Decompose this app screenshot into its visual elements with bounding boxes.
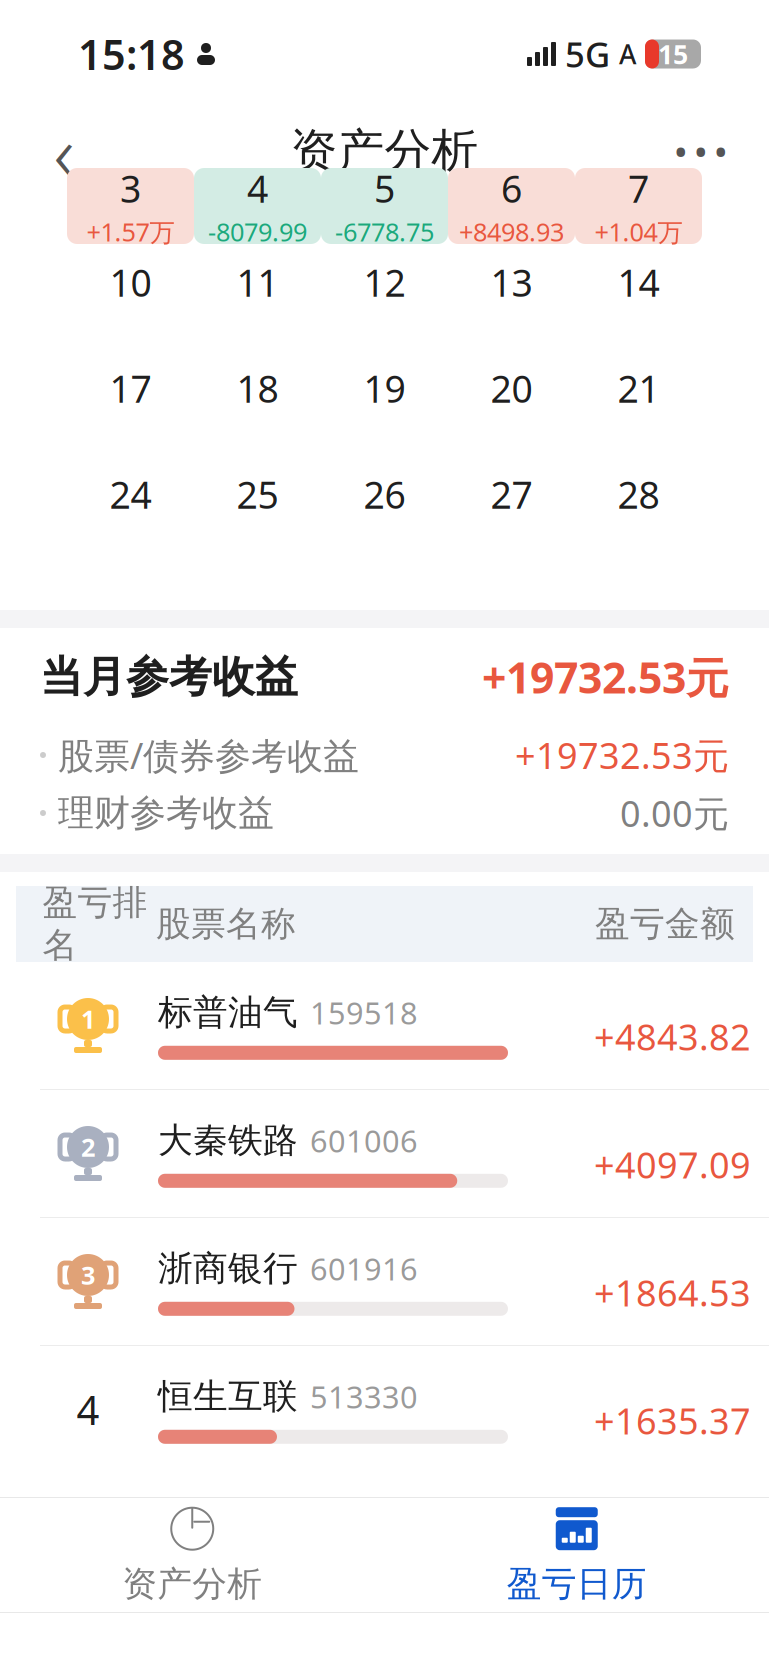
staticText: 标普油气 [158,991,298,1034]
button[interactable]: 14 [575,262,702,338]
staticText: +4843.82 [594,1013,751,1060]
staticText: 6 [501,163,522,213]
staticText: 盈亏排名 [42,881,147,967]
button[interactable]: 25 [194,474,321,550]
button[interactable]: 17 [67,368,194,444]
button[interactable]: 11 [194,262,321,338]
staticText: 10 [109,257,151,307]
button[interactable]: 13 [448,262,575,338]
staticText: 盈亏日历 [507,1563,647,1605]
staticText: 5G [565,31,610,77]
button[interactable]: 1 [0,962,769,1089]
staticText: 15 [658,36,688,72]
staticText: 1 [81,1002,95,1036]
button[interactable]: 18 [194,368,321,444]
button[interactable]: 12 [321,262,448,338]
staticText: +8498.93 [459,215,564,249]
staticText: 4 [76,1383,99,1436]
staticText: +19732.53元 [515,731,729,779]
button[interactable]: 7 [575,168,702,244]
staticText: 当月参考收益 [40,651,298,703]
staticText: 20 [490,363,532,413]
staticText: A [619,36,636,72]
staticText: 股票名称 [156,903,296,945]
button[interactable]: 19 [321,368,448,444]
button[interactable]: 5 [321,168,448,244]
staticText: • • • [675,131,727,171]
staticText: 3 [120,163,141,213]
staticText: +1.57万 [86,215,174,249]
staticText: 资产分析 [290,122,478,180]
button[interactable]: More options [655,109,747,193]
staticText: 21 [617,363,659,413]
staticText: 盈亏金额 [595,903,735,945]
staticText: 601916 [310,1248,418,1289]
staticText: 513330 [310,1376,418,1417]
staticText: 0.00元 [620,789,729,837]
staticText: +19732.53元 [482,649,729,705]
button[interactable]: 24 [67,474,194,550]
button[interactable]: 4 [194,168,321,244]
staticText: 理财参考收益 [58,791,274,835]
staticText: 13 [490,257,532,307]
staticText: 27 [490,469,532,519]
staticText: ‹ [53,98,74,204]
button[interactable]: 4 [0,1346,769,1473]
button[interactable]: 盈亏日历 [384,1499,769,1611]
staticText: +1.04万 [594,215,682,249]
staticText: 11 [236,257,278,307]
staticText: 大秦铁路 [158,1119,298,1162]
staticText: 2 [81,1130,95,1164]
button[interactable]: 10 [67,262,194,338]
staticText: 15:18 [78,27,185,81]
button[interactable]: 3 [0,1218,769,1345]
staticText: 恒生互联 [158,1375,298,1418]
button[interactable]: Back [22,109,106,193]
staticText: 4 [247,163,268,213]
staticText: -6778.75 [335,215,434,249]
staticText: 浙商银行 [158,1247,298,1290]
staticText: 24 [109,469,151,519]
staticText: 3 [81,1258,95,1292]
button[interactable]: 26 [321,474,448,550]
button[interactable]: 21 [575,368,702,444]
button[interactable]: 20 [448,368,575,444]
staticText: 7 [628,163,649,213]
staticText: +4097.09 [594,1141,751,1188]
staticText: 28 [617,469,659,519]
staticText: 14 [617,257,659,307]
button[interactable]: 3 [67,168,194,244]
staticText: 19 [363,363,405,413]
staticText: +1864.53 [594,1269,751,1316]
staticText: 股票/债券参考收益 [58,731,359,779]
staticText: 26 [363,469,405,519]
staticText: 5 [374,163,395,213]
staticText: 17 [109,363,151,413]
button[interactable]: 资产分析 [0,1499,384,1611]
staticText: 601006 [310,1120,418,1161]
button[interactable]: 27 [448,474,575,550]
staticText: 12 [363,257,405,307]
staticText: 18 [236,363,278,413]
staticText: 资产分析 [122,1563,262,1605]
staticText: 159518 [310,992,418,1033]
staticText: -8079.99 [208,215,307,249]
button[interactable]: 28 [575,474,702,550]
staticText: 25 [236,469,278,519]
button[interactable]: 6 [448,168,575,244]
button[interactable]: 2 [0,1090,769,1217]
